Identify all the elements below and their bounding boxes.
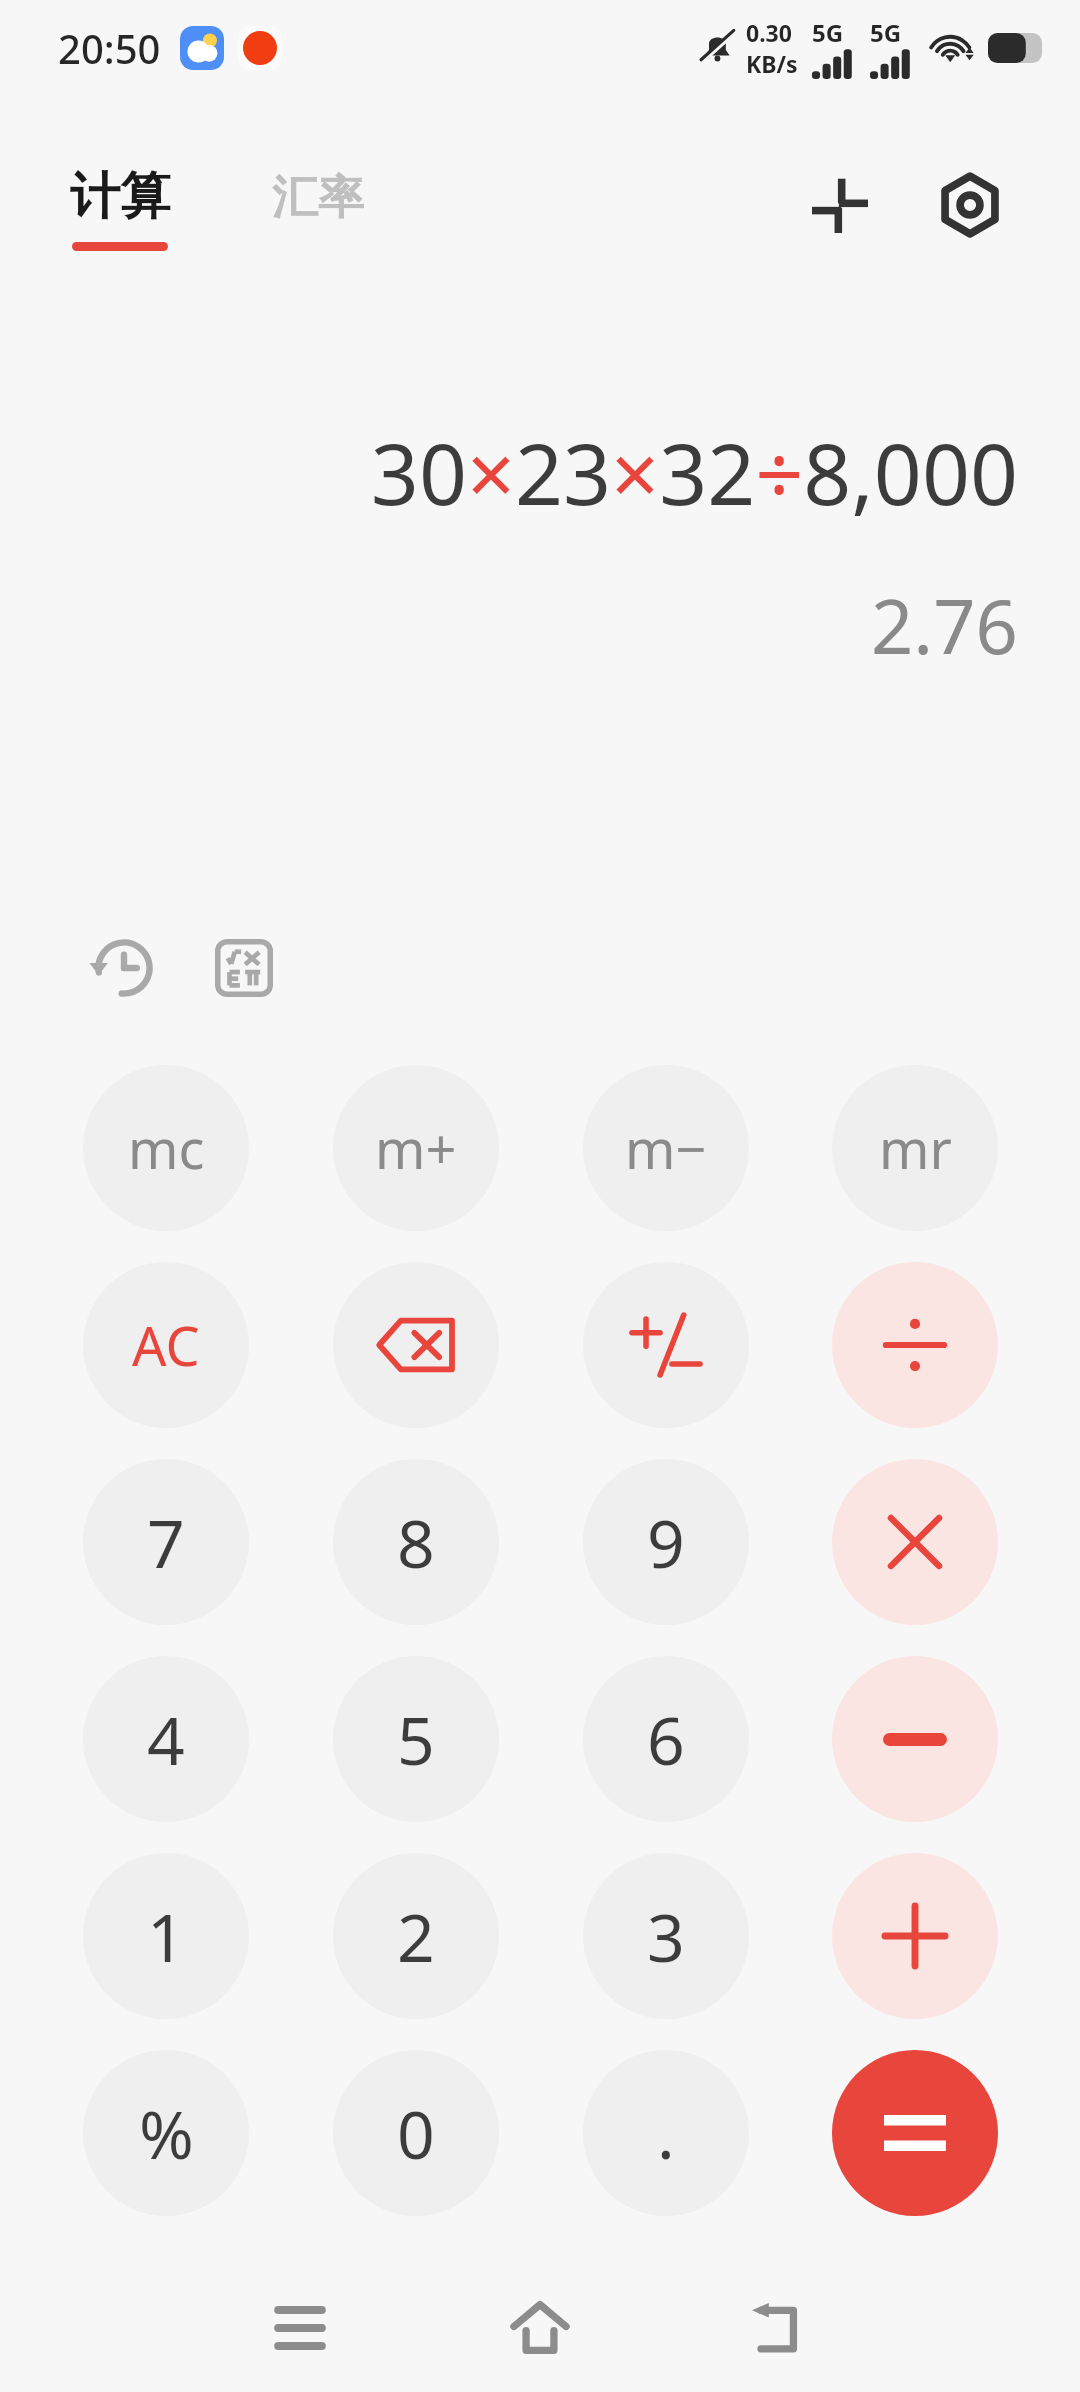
button[interactable]: 2 bbox=[333, 1853, 499, 2019]
staticText: 20:50 bbox=[58, 21, 161, 75]
staticText: 7 bbox=[147, 1497, 185, 1587]
staticText: 5 bbox=[397, 1694, 435, 1784]
staticText: 3 bbox=[647, 1891, 685, 1981]
button[interactable]: Add bbox=[832, 1853, 998, 2019]
button[interactable]: AC bbox=[83, 1262, 249, 1428]
button[interactable]: m+ bbox=[333, 1065, 499, 1231]
staticText: m+ bbox=[375, 1111, 457, 1185]
button[interactable]: Divide bbox=[832, 1262, 998, 1428]
button[interactable]: 9 bbox=[583, 1459, 749, 1625]
staticText: mr bbox=[879, 1111, 952, 1185]
button[interactable]: Equals bbox=[832, 2050, 998, 2216]
button[interactable]: Settings bbox=[920, 155, 1020, 255]
staticText: 30×23×32÷8,000 bbox=[370, 415, 1018, 529]
button[interactable]: mc bbox=[83, 1065, 249, 1231]
staticText: . bbox=[657, 2088, 675, 2178]
button[interactable]: Recents bbox=[240, 2268, 360, 2388]
button[interactable]: Toggle sign bbox=[583, 1262, 749, 1428]
staticText: AC bbox=[132, 1308, 200, 1382]
staticText: 计算 bbox=[70, 165, 170, 228]
button[interactable]: Backspace bbox=[333, 1262, 499, 1428]
staticText: 汇率 bbox=[272, 169, 364, 227]
staticText: 1 bbox=[147, 1891, 185, 1981]
staticText: KB/s bbox=[746, 48, 798, 79]
staticText: m− bbox=[625, 1111, 707, 1185]
staticText: 2.76 bbox=[871, 575, 1018, 676]
button[interactable]: 汇率 bbox=[272, 169, 364, 227]
button[interactable]: m− bbox=[583, 1065, 749, 1231]
button[interactable]: mr bbox=[832, 1065, 998, 1231]
button[interactable]: 0 bbox=[333, 2050, 499, 2216]
button[interactable]: 6 bbox=[583, 1656, 749, 1822]
button[interactable]: 7 bbox=[83, 1459, 249, 1625]
staticText: 0.30 bbox=[746, 17, 792, 48]
staticText: 2 bbox=[397, 1891, 435, 1981]
button[interactable]: 8 bbox=[333, 1459, 499, 1625]
button[interactable]: 3 bbox=[583, 1853, 749, 2019]
button[interactable]: Back bbox=[720, 2268, 840, 2388]
button[interactable]: Multiply bbox=[832, 1459, 998, 1625]
staticText: 4 bbox=[147, 1694, 185, 1784]
button[interactable]: 5 bbox=[333, 1656, 499, 1822]
staticText: 0 bbox=[397, 2088, 435, 2178]
button[interactable]: Collapse bbox=[790, 155, 890, 255]
button[interactable]: 计算 bbox=[68, 165, 172, 251]
button[interactable]: Subtract bbox=[832, 1656, 998, 1822]
button[interactable]: Home bbox=[480, 2268, 600, 2388]
staticText: 9 bbox=[647, 1497, 685, 1587]
button[interactable]: History bbox=[76, 920, 172, 1016]
staticText: 6 bbox=[647, 1694, 685, 1784]
button[interactable]: 4 bbox=[83, 1656, 249, 1822]
staticText: 5G bbox=[812, 16, 844, 49]
staticText: % bbox=[139, 2088, 194, 2178]
button[interactable]: % bbox=[83, 2050, 249, 2216]
staticText: mc bbox=[128, 1111, 205, 1185]
button[interactable]: Scientific mode bbox=[196, 920, 292, 1016]
staticText: 5G bbox=[870, 16, 902, 49]
button[interactable]: . bbox=[583, 2050, 749, 2216]
staticText: 8 bbox=[397, 1497, 435, 1587]
button[interactable]: 1 bbox=[83, 1853, 249, 2019]
